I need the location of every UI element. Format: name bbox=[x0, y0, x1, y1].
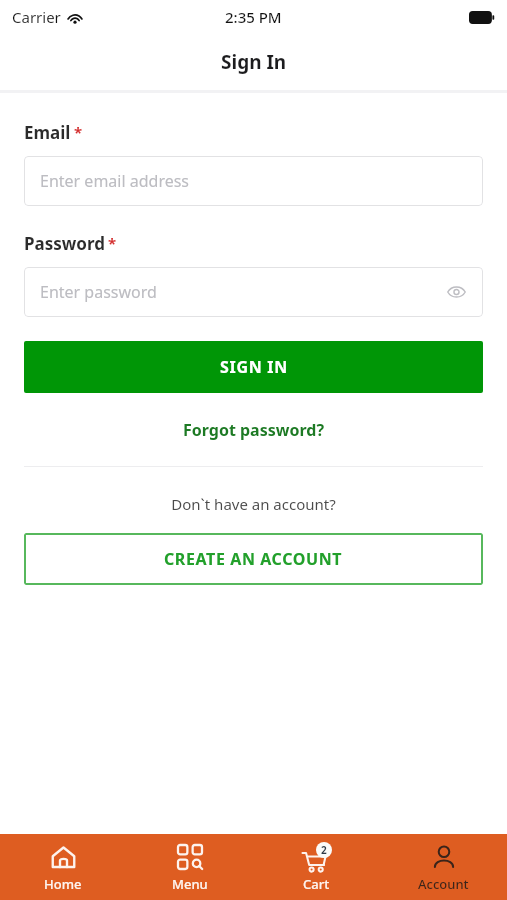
staticText: SIGN IN bbox=[220, 356, 288, 378]
button[interactable]: Account bbox=[380, 834, 507, 900]
button[interactable]: Show password bbox=[443, 279, 469, 305]
staticText: * bbox=[74, 122, 83, 142]
button[interactable]: Enter email address bbox=[24, 156, 483, 206]
button[interactable]: Forgot password? bbox=[173, 415, 335, 445]
staticText: Cart bbox=[303, 875, 330, 893]
staticText: Menu bbox=[172, 875, 208, 893]
staticText: * bbox=[108, 233, 117, 253]
button[interactable]: CREATE AN ACCOUNT bbox=[24, 533, 483, 585]
staticText: Account bbox=[418, 875, 469, 893]
staticText: Enter password bbox=[40, 281, 157, 303]
staticText: Forgot password? bbox=[183, 419, 325, 441]
staticText: Enter email address bbox=[40, 170, 190, 192]
staticText: 2 bbox=[321, 843, 327, 857]
staticText: Email bbox=[24, 121, 71, 144]
button[interactable]: Home bbox=[0, 834, 126, 900]
button[interactable]: 2 bbox=[253, 834, 380, 900]
staticText: Sign In bbox=[221, 49, 287, 75]
button[interactable]: Menu bbox=[126, 834, 253, 900]
staticText: 2:35 PM bbox=[225, 7, 282, 27]
button[interactable]: SIGN IN bbox=[24, 341, 483, 393]
staticText: CREATE AN ACCOUNT bbox=[164, 548, 343, 570]
staticText: Home bbox=[44, 875, 82, 893]
staticText: Don`t have an account? bbox=[0, 494, 507, 514]
button[interactable]: Enter password bbox=[24, 267, 483, 317]
staticText: Password bbox=[24, 232, 105, 255]
staticText: Carrier bbox=[12, 7, 61, 27]
